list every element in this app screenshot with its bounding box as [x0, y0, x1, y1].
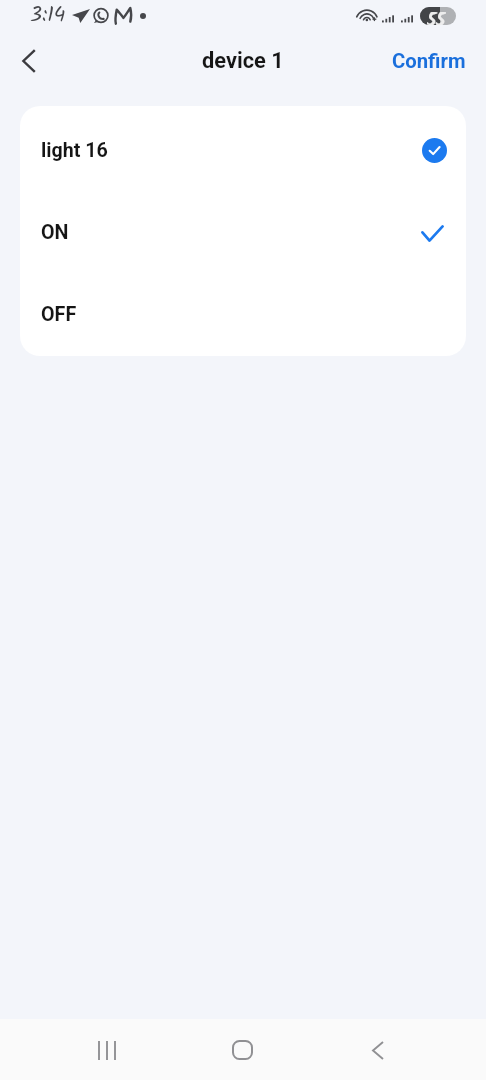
button[interactable]: Home [218, 1026, 266, 1074]
button[interactable]: Confirm [372, 31, 486, 91]
button[interactable]: light 16 [20, 109, 466, 191]
staticText: light 16 [41, 139, 108, 162]
button[interactable]: Recent apps [83, 1026, 131, 1074]
button[interactable]: OFF [20, 273, 466, 355]
staticText: OFF [41, 303, 77, 326]
staticText: 3:14 [30, 0, 66, 30]
button[interactable]: Back [5, 37, 53, 85]
staticText: 55 [427, 7, 446, 25]
button[interactable]: ON [20, 191, 466, 273]
staticText: ON [41, 221, 69, 244]
staticText: device 1 [202, 48, 284, 74]
button[interactable]: Back [354, 1026, 402, 1074]
staticText: Confirm [392, 49, 466, 73]
